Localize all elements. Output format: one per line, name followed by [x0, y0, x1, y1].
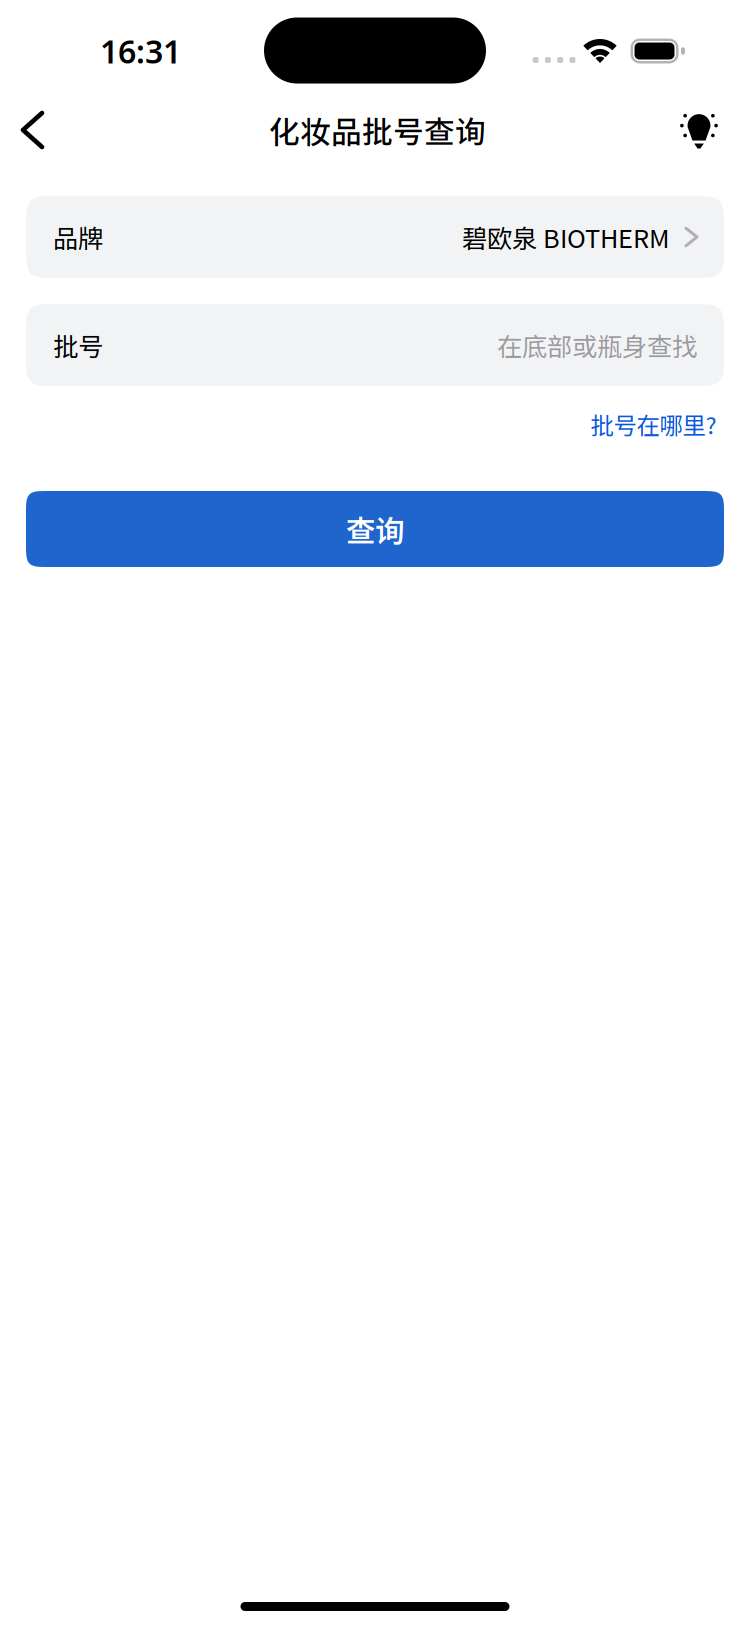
staticText: 批号在哪里?: [590, 407, 716, 441]
staticText: 化妆品批号查询: [269, 108, 486, 152]
button[interactable]: 查询: [26, 491, 724, 567]
staticText: 查询: [346, 508, 404, 550]
staticText: 16:31: [100, 30, 181, 72]
button[interactable]: Tips: [680, 94, 750, 166]
staticText: 品牌: [53, 219, 103, 255]
button[interactable]: 品牌: [26, 196, 724, 278]
staticText: 批号: [53, 327, 103, 363]
staticText: 碧欧泉 BIOTHERM: [462, 219, 670, 255]
button[interactable]: Back: [0, 94, 74, 166]
staticText: 在底部或瓶身查找: [497, 327, 697, 363]
button[interactable]: 批号在哪里?: [566, 404, 723, 444]
